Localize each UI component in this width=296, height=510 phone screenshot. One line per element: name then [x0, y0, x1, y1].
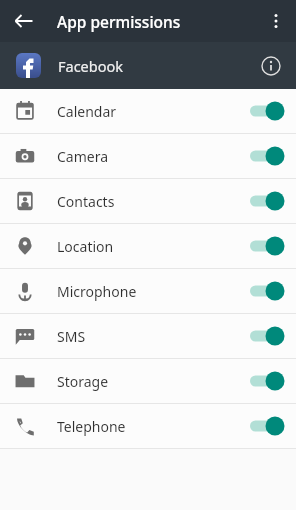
button[interactable]: Microphone [0, 269, 296, 313]
staticText: Facebook [58, 56, 124, 76]
button[interactable]: Back [8, 5, 40, 37]
button[interactable]: Camera permission toggle [248, 142, 286, 170]
button[interactable]: SMS [0, 314, 296, 358]
staticText: Storage [57, 372, 109, 391]
button[interactable]: Location [0, 224, 296, 268]
button[interactable]: Contacts permission toggle [248, 187, 286, 215]
button[interactable]: Telephone permission toggle [248, 412, 286, 440]
staticText: Telephone [57, 417, 126, 436]
staticText: SMS [57, 327, 86, 346]
button[interactable]: Telephone [0, 404, 296, 448]
staticText: Contacts [57, 192, 115, 211]
staticText: Microphone [57, 282, 137, 301]
staticText: App permissions [57, 11, 181, 32]
staticText: Calendar [57, 102, 117, 121]
button[interactable]: Camera [0, 134, 296, 178]
staticText: Camera [57, 147, 109, 166]
button[interactable]: More options [260, 5, 292, 37]
button[interactable]: Microphone permission toggle [248, 277, 286, 305]
button[interactable]: Facebook [0, 42, 296, 89]
button[interactable]: Location permission toggle [248, 232, 286, 260]
button[interactable]: Calendar [0, 89, 296, 133]
button[interactable]: Calendar permission toggle [248, 97, 286, 125]
button[interactable]: SMS permission toggle [248, 322, 286, 350]
button[interactable]: Storage permission toggle [248, 367, 286, 395]
button[interactable]: App info [256, 51, 286, 81]
button[interactable]: Contacts [0, 179, 296, 223]
button[interactable]: Storage [0, 359, 296, 403]
staticText: Location [57, 237, 114, 256]
